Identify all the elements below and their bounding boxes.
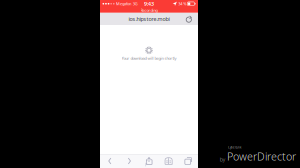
staticText: Megafon bbox=[116, 1, 131, 6]
button[interactable]: Tabs bbox=[178, 154, 198, 168]
staticText: CyberLink bbox=[228, 146, 241, 149]
staticText: 3G bbox=[133, 1, 138, 6]
button[interactable]: Forward bbox=[120, 154, 139, 168]
staticText: ios.hipstore.mobi bbox=[128, 15, 169, 22]
staticText: Recording bbox=[140, 7, 157, 13]
staticText: 34 % bbox=[178, 1, 186, 6]
button[interactable]: Bookmarks bbox=[159, 154, 178, 168]
button[interactable]: Share bbox=[139, 154, 159, 168]
staticText: PowerDirector bbox=[227, 149, 296, 163]
button[interactable]: Reload bbox=[184, 13, 195, 25]
button[interactable]: Back bbox=[100, 154, 120, 168]
staticText: Your download will begin shortly bbox=[121, 55, 176, 61]
staticText: by bbox=[220, 156, 226, 163]
staticText: 9:43 bbox=[144, 0, 154, 7]
